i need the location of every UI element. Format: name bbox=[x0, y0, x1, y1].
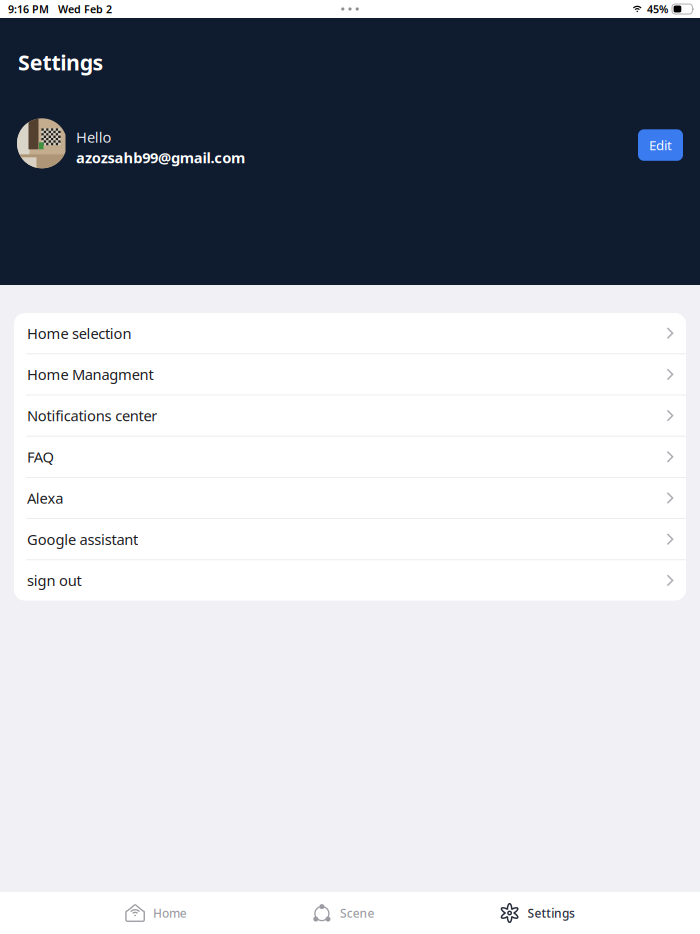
button[interactable]: Edit bbox=[638, 118, 683, 161]
staticText: Settings bbox=[528, 905, 575, 921]
button[interactable]: Google assistant bbox=[14, 519, 686, 559]
button[interactable]: Home selection bbox=[14, 313, 686, 353]
button[interactable]: Settings bbox=[500, 892, 575, 934]
button[interactable]: Notifications center bbox=[14, 395, 686, 436]
staticText: Home bbox=[153, 905, 187, 921]
staticText: azozsahb99@gmail.com bbox=[76, 148, 245, 167]
button[interactable]: FAQ bbox=[14, 437, 686, 477]
staticText: sign out bbox=[27, 571, 82, 590]
button[interactable]: Home Managment bbox=[14, 354, 686, 395]
staticText: Scene bbox=[340, 905, 374, 921]
staticText: Alexa bbox=[27, 488, 63, 508]
staticText: Hello bbox=[76, 127, 112, 147]
button[interactable]: Alexa bbox=[14, 478, 686, 518]
staticText: 9:16 PM Wed Feb 2 bbox=[8, 2, 112, 16]
staticText: Edit bbox=[649, 136, 672, 154]
button[interactable]: sign out bbox=[14, 560, 686, 601]
staticText: 45% bbox=[647, 2, 668, 16]
button[interactable]: Home bbox=[125, 892, 187, 934]
staticText: Home Managment bbox=[27, 365, 153, 384]
staticText: FAQ bbox=[27, 447, 54, 467]
staticText: Home selection bbox=[27, 323, 131, 343]
staticText: Settings bbox=[18, 48, 104, 76]
staticText: Google assistant bbox=[27, 529, 138, 549]
staticText: Notifications center bbox=[27, 406, 157, 425]
button[interactable]: Scene bbox=[312, 892, 374, 934]
